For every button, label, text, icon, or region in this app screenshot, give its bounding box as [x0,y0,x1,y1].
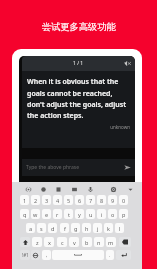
button[interactable]: 1 / 1 [22,56,135,71]
staticText: 0 [122,197,126,204]
staticText: l [119,225,121,232]
button[interactable]: Stickers [38,184,48,194]
staticText: o [111,211,115,218]
button[interactable]: q [20,209,29,219]
staticText: q [23,211,27,218]
button[interactable]: w [31,209,40,219]
button[interactable]: Settings [108,184,118,194]
staticText: 8 [100,197,104,204]
staticText: r [56,211,59,218]
staticText: d [51,225,55,232]
button[interactable]: j [93,223,102,233]
staticText: u [89,211,93,218]
staticText: 1 / 1 [73,60,84,67]
button[interactable]: m [106,237,116,247]
staticText: 9 [111,197,115,204]
staticText: a [29,225,33,232]
button[interactable]: Language [31,250,40,260]
button[interactable]: p [119,209,128,219]
staticText: 6 [78,197,82,204]
staticText: . [109,252,111,258]
staticText: m [108,239,114,246]
staticText: Type the above phrase [26,164,80,171]
button[interactable]: y [75,209,84,219]
staticText: c [61,239,64,246]
staticText: 7 [89,197,93,204]
staticText: 2 [34,197,38,204]
button[interactable]: Send [123,163,132,172]
button[interactable]: Type the above phrase [22,159,135,176]
staticText: z [36,239,39,246]
button[interactable]: Shift [20,237,30,247]
button[interactable]: s [37,223,46,233]
staticText: i [101,211,103,218]
staticText: w [33,211,38,218]
staticText: b [85,239,89,246]
button[interactable]: f [60,223,69,233]
staticText: e [45,211,49,218]
button[interactable]: Microphone [85,184,95,194]
button[interactable]: x [44,237,54,247]
button[interactable]: Enter [116,250,131,260]
staticText: h [85,225,89,232]
button[interactable]: n [94,237,104,247]
staticText: !#1 [22,252,29,258]
staticText: 尝试更多高级功能 [42,21,116,33]
button[interactable]: d [48,223,57,233]
staticText: When it is obvious that the goals cannot… [27,77,131,120]
button[interactable]: 3 [42,195,51,205]
button[interactable]: Space [52,250,104,260]
button[interactable]: o [108,209,117,219]
staticText: 1 [23,197,27,204]
staticText: 5 [67,197,71,204]
button[interactable]: i [97,209,106,219]
button[interactable]: r [53,209,62,219]
button[interactable]: z [32,237,42,247]
button[interactable]: v [69,237,79,247]
staticText: , [46,252,48,258]
button[interactable]: l [115,223,124,233]
button[interactable]: 4 [53,195,62,205]
button[interactable]: , [42,250,51,260]
staticText: y [78,211,81,218]
button[interactable]: g [71,223,80,233]
button[interactable]: k [104,223,113,233]
button[interactable]: 5 [64,195,73,205]
button[interactable]: Mute [123,59,132,68]
button[interactable]: a [26,223,35,233]
button[interactable]: 9 [108,195,117,205]
button[interactable]: c [57,237,67,247]
staticText: 3 [45,197,49,204]
staticText: p [122,211,126,218]
button[interactable]: e [42,209,51,219]
staticText: unknown [27,124,130,130]
button[interactable]: 0 [119,195,128,205]
button[interactable]: Voice typing [23,184,33,194]
button[interactable]: 2 [31,195,40,205]
button[interactable]: . [106,250,114,260]
button[interactable]: 1 [20,195,29,205]
button[interactable]: GIF [69,184,79,194]
staticText: g [74,225,78,232]
staticText: j [97,225,99,232]
button[interactable]: b [82,237,92,247]
staticText: x [48,239,51,246]
staticText: f [64,225,66,232]
button[interactable]: Backspace [119,237,131,247]
button[interactable]: 8 [97,195,106,205]
button[interactable]: Collapse [125,184,135,194]
button[interactable]: h [82,223,91,233]
button[interactable]: 7 [86,195,95,205]
button[interactable]: Symbols [20,250,30,260]
button[interactable]: Clipboard [53,184,63,194]
button[interactable]: u [86,209,95,219]
staticText: n [97,239,101,246]
staticText: t [68,211,70,218]
button[interactable]: t [64,209,73,219]
staticText: s [40,225,43,232]
button[interactable]: 6 [75,195,84,205]
staticText: k [107,225,110,232]
staticText: v [73,239,76,246]
staticText: 4 [56,197,60,204]
